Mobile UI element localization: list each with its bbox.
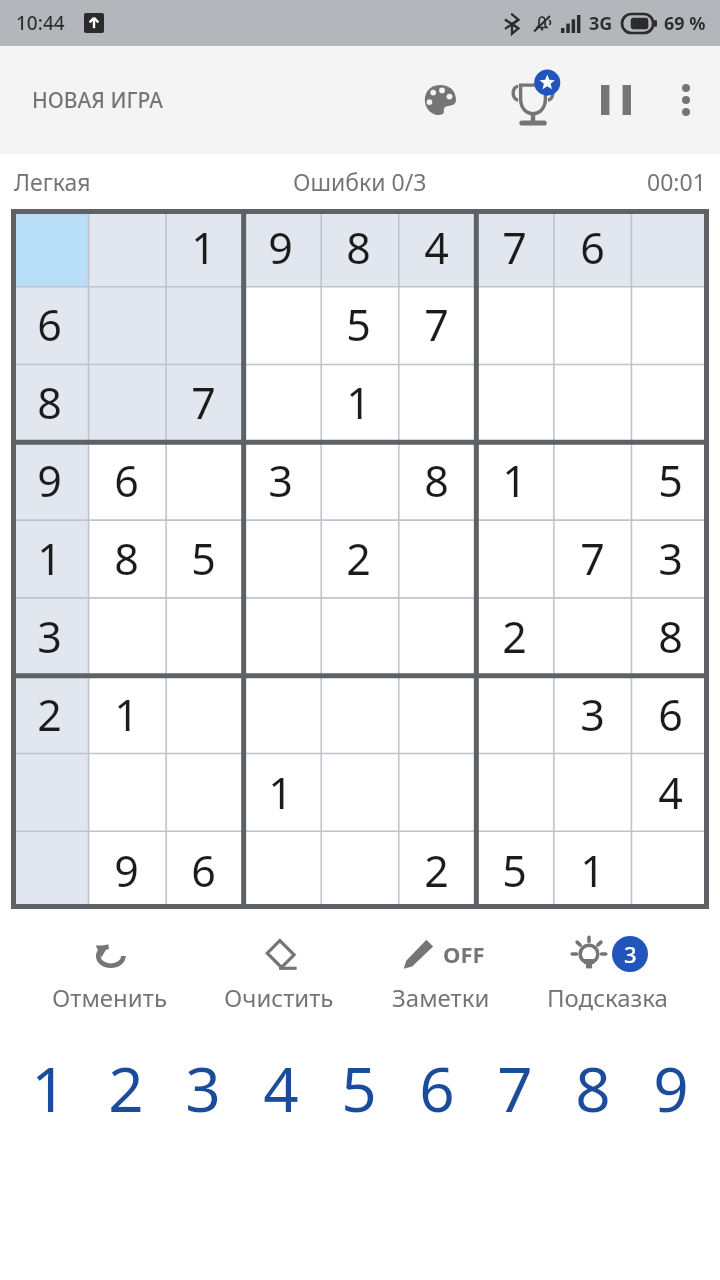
- button[interactable]: 3: [631, 519, 709, 597]
- button[interactable]: Achievements: [502, 69, 564, 131]
- button[interactable]: [242, 675, 319, 753]
- button[interactable]: 6: [88, 441, 165, 519]
- button[interactable]: [397, 753, 475, 831]
- button[interactable]: 5: [475, 831, 553, 909]
- button[interactable]: 7: [553, 519, 631, 597]
- button[interactable]: 1: [319, 363, 397, 441]
- button[interactable]: [319, 597, 397, 675]
- button[interactable]: [319, 753, 397, 831]
- button[interactable]: 9: [11, 441, 88, 519]
- button[interactable]: 5: [165, 519, 242, 597]
- button[interactable]: 6: [165, 831, 242, 909]
- button[interactable]: [11, 831, 88, 909]
- button[interactable]: [475, 519, 553, 597]
- button[interactable]: 1: [165, 209, 242, 286]
- button[interactable]: [397, 363, 475, 441]
- button[interactable]: 5: [631, 441, 709, 519]
- button[interactable]: 8: [319, 209, 397, 286]
- button[interactable]: 9: [88, 831, 165, 909]
- button[interactable]: 7: [165, 363, 242, 441]
- button[interactable]: 2: [475, 597, 553, 675]
- button[interactable]: [88, 286, 165, 363]
- button[interactable]: [553, 363, 631, 441]
- button[interactable]: 1: [475, 441, 553, 519]
- button[interactable]: 7: [476, 1040, 554, 1136]
- button[interactable]: [242, 597, 319, 675]
- button[interactable]: [631, 209, 709, 286]
- button[interactable]: 6: [553, 209, 631, 286]
- button[interactable]: [631, 831, 709, 909]
- button[interactable]: [631, 286, 709, 363]
- button[interactable]: [475, 363, 553, 441]
- button[interactable]: [165, 753, 242, 831]
- button[interactable]: [397, 675, 475, 753]
- button[interactable]: [319, 831, 397, 909]
- button[interactable]: [631, 363, 709, 441]
- button[interactable]: 2: [11, 675, 88, 753]
- button[interactable]: [165, 597, 242, 675]
- button[interactable]: 5: [320, 1040, 398, 1136]
- button[interactable]: [475, 675, 553, 753]
- button[interactable]: Pause: [588, 72, 644, 128]
- button[interactable]: [553, 597, 631, 675]
- button[interactable]: 9: [242, 209, 319, 286]
- button[interactable]: More options: [658, 72, 714, 128]
- button[interactable]: 7: [397, 286, 475, 363]
- button[interactable]: 1: [11, 519, 88, 597]
- button[interactable]: [88, 209, 165, 286]
- button[interactable]: 4: [631, 753, 709, 831]
- button[interactable]: [397, 597, 475, 675]
- button[interactable]: 6: [11, 286, 88, 363]
- button[interactable]: 2: [397, 831, 475, 909]
- button[interactable]: 8: [397, 441, 475, 519]
- button[interactable]: [475, 286, 553, 363]
- button[interactable]: 2: [87, 1040, 164, 1136]
- button[interactable]: [397, 519, 475, 597]
- button[interactable]: 7: [475, 209, 553, 286]
- button[interactable]: 5: [319, 286, 397, 363]
- button[interactable]: [242, 286, 319, 363]
- staticText: 3: [37, 607, 62, 666]
- button[interactable]: 4: [242, 1040, 320, 1136]
- button[interactable]: 3: [553, 675, 631, 753]
- button[interactable]: [11, 753, 88, 831]
- button[interactable]: [165, 675, 242, 753]
- button[interactable]: 1: [88, 675, 165, 753]
- button[interactable]: [165, 286, 242, 363]
- button[interactable]: Themes: [412, 72, 468, 128]
- button[interactable]: Hint: [541, 929, 674, 1018]
- button[interactable]: [319, 675, 397, 753]
- button[interactable]: [242, 363, 319, 441]
- button[interactable]: Notes: [386, 929, 496, 1018]
- button[interactable]: 9: [632, 1040, 710, 1136]
- button[interactable]: 8: [88, 519, 165, 597]
- button[interactable]: НОВАЯ ИГРА: [0, 72, 196, 129]
- button[interactable]: 3: [164, 1040, 242, 1136]
- button[interactable]: 8: [11, 363, 88, 441]
- button[interactable]: 6: [398, 1040, 476, 1136]
- button[interactable]: [553, 286, 631, 363]
- button[interactable]: Erase: [218, 929, 340, 1018]
- button[interactable]: [88, 597, 165, 675]
- button[interactable]: [11, 209, 88, 286]
- button[interactable]: 1: [553, 831, 631, 909]
- button[interactable]: 4: [397, 209, 475, 286]
- button[interactable]: 8: [554, 1040, 632, 1136]
- button[interactable]: 6: [631, 675, 709, 753]
- button[interactable]: [88, 753, 165, 831]
- button[interactable]: [553, 753, 631, 831]
- button[interactable]: 2: [319, 519, 397, 597]
- button[interactable]: Undo: [46, 929, 173, 1018]
- button[interactable]: [319, 441, 397, 519]
- button[interactable]: [475, 753, 553, 831]
- button[interactable]: 8: [631, 597, 709, 675]
- button[interactable]: [242, 831, 319, 909]
- button[interactable]: [165, 441, 242, 519]
- button[interactable]: [553, 441, 631, 519]
- button[interactable]: 1: [10, 1040, 87, 1136]
- button[interactable]: 3: [242, 441, 319, 519]
- button[interactable]: [88, 363, 165, 441]
- button[interactable]: [242, 519, 319, 597]
- button[interactable]: 1: [242, 753, 319, 831]
- button[interactable]: 3: [11, 597, 88, 675]
